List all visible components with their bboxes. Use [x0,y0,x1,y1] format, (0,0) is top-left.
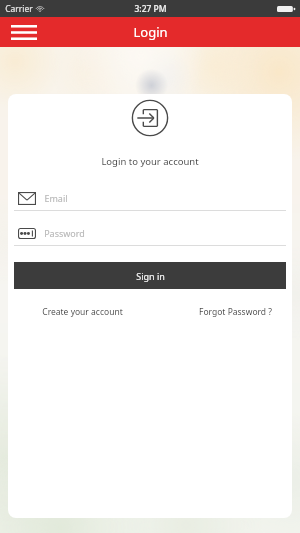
button[interactable]: Open navigation menu [8,19,40,45]
button[interactable]: Forgot Password ? [199,306,272,318]
staticText: Carrier [5,3,33,15]
staticText: 3:27 PM [134,3,167,15]
staticText: Password [44,227,85,239]
staticText: Email [44,192,68,204]
staticText: Sign in [136,270,165,282]
staticText: Login to your account [101,155,199,168]
button[interactable]: Sign in [14,262,286,289]
button[interactable]: Password [14,221,286,246]
staticText: Forgot Password ? [199,306,272,318]
staticText: Create your account [42,306,123,318]
button[interactable]: Email [14,186,286,211]
staticText: Login [133,23,168,41]
button[interactable]: Create your account [42,306,123,318]
